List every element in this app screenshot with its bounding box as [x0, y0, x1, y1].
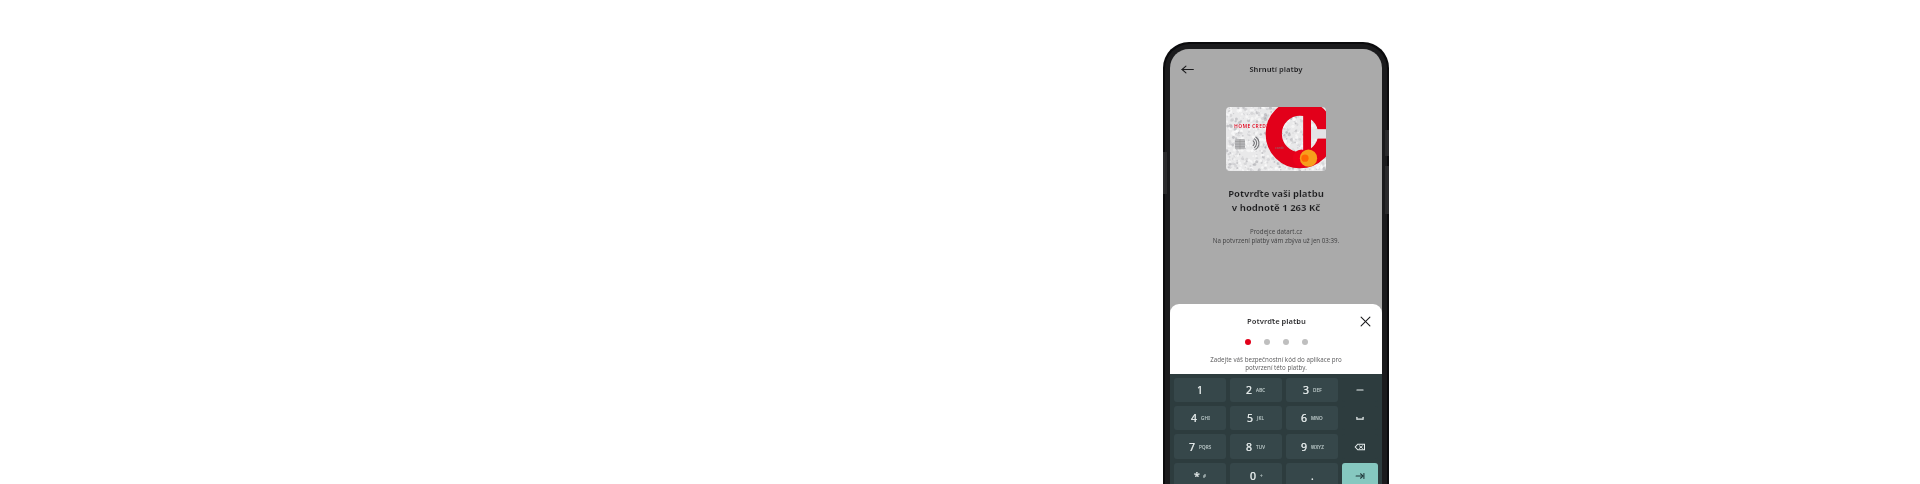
button[interactable]: Close — [1356, 312, 1374, 330]
staticText: 8 — [1246, 440, 1253, 454]
button[interactable]: 7 — [1174, 434, 1226, 459]
staticText: 1 — [1197, 383, 1204, 397]
staticText: DEF — [1313, 387, 1322, 393]
staticText: ABC — [1256, 387, 1266, 393]
staticText: 2 — [1246, 383, 1253, 397]
button[interactable]: 0 — [1230, 463, 1282, 484]
staticText: . — [1311, 469, 1314, 483]
staticText: # — [1203, 473, 1207, 479]
button[interactable]: 8 — [1230, 434, 1282, 459]
staticText: Zadejte váš bezpečnostní kód do aplikace… — [1170, 355, 1382, 363]
staticText: JKL — [1257, 415, 1265, 421]
button[interactable]: 1 — [1174, 378, 1226, 402]
staticText: 9 — [1301, 440, 1308, 454]
staticText: PQRS — [1199, 444, 1212, 450]
button[interactable]: Dash — [1342, 378, 1378, 402]
button[interactable]: Enter — [1342, 463, 1378, 484]
staticText: + — [1260, 473, 1263, 479]
staticText: 6 — [1301, 411, 1308, 425]
staticText: Potvrďte vaši platbu — [1170, 187, 1382, 200]
button[interactable]: . — [1286, 463, 1338, 484]
staticText: 5 — [1247, 411, 1254, 425]
staticText: Potvrďte platbu — [1247, 316, 1306, 326]
button[interactable]: 6 — [1286, 406, 1338, 430]
staticText: 4 — [1191, 411, 1198, 425]
button[interactable]: Space — [1342, 406, 1378, 430]
staticText: WXYZ — [1311, 444, 1324, 450]
button[interactable]: 4 — [1174, 406, 1226, 430]
button[interactable]: 3 — [1286, 378, 1338, 402]
staticText: HOME CREDIT — [1234, 123, 1272, 130]
button[interactable]: HOME CREDIT — [1226, 107, 1326, 171]
staticText: 7 — [1189, 440, 1196, 454]
button[interactable]: Back — [1174, 56, 1200, 82]
button[interactable]: Delete — [1342, 434, 1378, 459]
staticText: MNO — [1311, 415, 1323, 421]
staticText: Na potvrzení platby vám zbýva už jen 03:… — [1170, 236, 1382, 244]
staticText: GHI — [1201, 415, 1210, 421]
button[interactable]: 5 — [1230, 406, 1282, 430]
staticText: 0 — [1250, 469, 1257, 483]
staticText: cardc — [1275, 145, 1285, 150]
staticText: v hodnotě 1 263 Kč — [1170, 201, 1382, 214]
staticText: Shrnutí platby — [1249, 64, 1303, 74]
staticText: TUV — [1256, 444, 1266, 450]
staticText: * — [1194, 469, 1200, 483]
button[interactable]: 9 — [1286, 434, 1338, 459]
button[interactable]: 2 — [1230, 378, 1282, 402]
staticText: 3 — [1303, 383, 1310, 397]
staticText: potvrzení této platby. — [1170, 363, 1382, 371]
button[interactable]: * — [1174, 463, 1226, 484]
staticText: Prodejce datart.cz — [1170, 227, 1382, 235]
